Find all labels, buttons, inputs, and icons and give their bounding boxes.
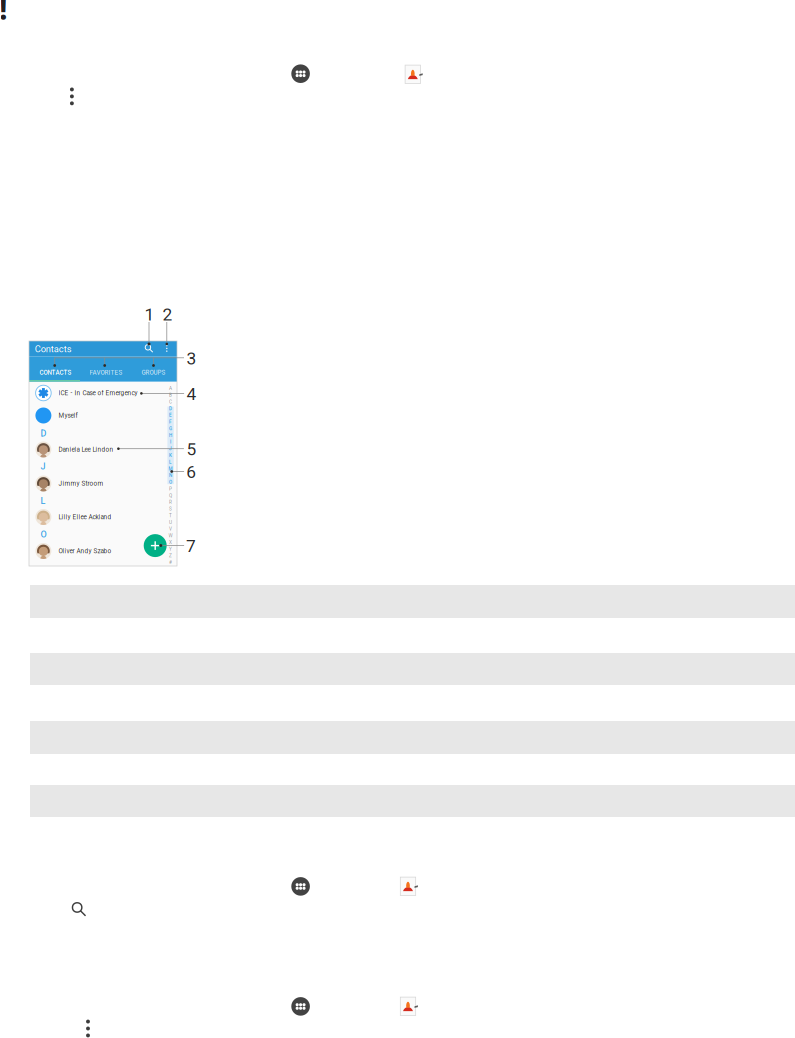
- staticText: P: [169, 486, 172, 492]
- staticText: Oliver Andy Szabo: [59, 547, 112, 555]
- staticText: V: [169, 526, 172, 532]
- staticText: W: [169, 533, 173, 538]
- staticText: D: [169, 406, 172, 411]
- staticText: 5: [187, 439, 197, 459]
- staticText: I: [170, 439, 171, 445]
- staticText: 6: [186, 462, 196, 482]
- staticText: Contacts: [35, 343, 72, 354]
- staticText: Myself: [59, 412, 78, 419]
- staticText: U: [169, 520, 172, 525]
- staticText: Z: [169, 553, 172, 558]
- staticText: Y: [169, 546, 172, 552]
- staticText: K: [169, 453, 172, 458]
- staticText: L: [40, 496, 45, 506]
- staticText: C: [169, 399, 172, 405]
- staticText: 1: [145, 304, 155, 325]
- staticText: T: [169, 513, 172, 518]
- button[interactable]: ICE - In Case of Emergency: [29, 384, 177, 401]
- button[interactable]: Add contact: [144, 534, 167, 557]
- staticText: 3: [187, 348, 197, 369]
- button[interactable]: Search: [142, 341, 156, 356]
- staticText: L: [169, 459, 172, 465]
- staticText: FAVORITES: [89, 369, 122, 376]
- button[interactable]: GROUPS: [128, 360, 178, 385]
- staticText: F: [169, 419, 172, 425]
- staticText: ICE - In Case of Emergency: [59, 389, 138, 397]
- staticText: D: [40, 428, 46, 439]
- staticText: 7: [186, 536, 196, 556]
- staticText: X: [169, 540, 172, 545]
- staticText: Jimmy Stroom: [59, 480, 104, 487]
- staticText: J: [40, 461, 45, 472]
- button[interactable]: CONTACTS: [31, 360, 81, 385]
- staticText: O: [169, 479, 172, 485]
- staticText: GROUPS: [141, 369, 165, 376]
- staticText: !: [0, 0, 7, 28]
- staticText: G: [169, 426, 172, 431]
- staticText: A: [169, 386, 172, 391]
- staticText: H: [169, 433, 172, 438]
- staticText: Daniela Lee Lindon: [59, 446, 114, 453]
- button[interactable]: FAVORITES: [81, 360, 131, 385]
- staticText: 2: [163, 304, 173, 325]
- button[interactable]: More options: [161, 341, 172, 356]
- button[interactable]: Jimmy Stroom: [29, 475, 177, 492]
- staticText: B: [169, 392, 172, 398]
- button[interactable]: Myself: [29, 407, 177, 424]
- staticText: O: [40, 529, 46, 540]
- staticText: Lilly Ellee Ackland: [59, 513, 112, 521]
- staticText: E: [169, 412, 172, 418]
- staticText: R: [169, 499, 172, 505]
- staticText: #: [169, 560, 172, 565]
- button[interactable]: Daniela Lee Lindon: [29, 441, 177, 458]
- staticText: CONTACTS: [40, 369, 72, 376]
- staticText: 4: [187, 384, 197, 404]
- button[interactable]: Lilly Ellee Ackland: [29, 508, 177, 525]
- staticText: M: [169, 466, 173, 471]
- staticText: J: [169, 446, 172, 451]
- staticText: N: [169, 473, 172, 478]
- button[interactable]: Oliver Andy Szabo: [29, 542, 177, 559]
- staticText: Q: [169, 493, 172, 498]
- staticText: S: [169, 506, 172, 512]
